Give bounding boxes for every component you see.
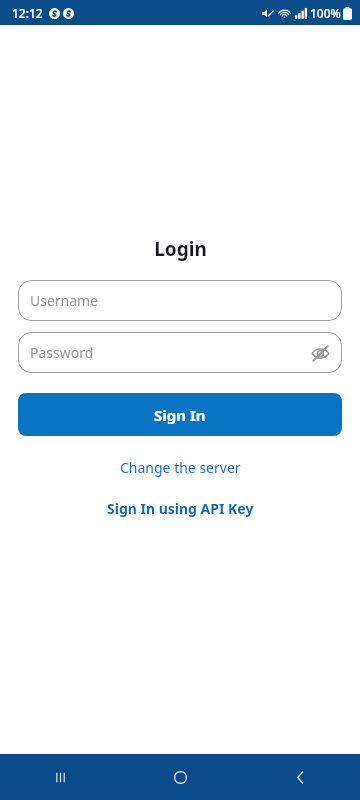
button[interactable]: Username [18, 280, 342, 321]
button[interactable]: Change the server [108, 454, 253, 481]
staticText: Username [30, 291, 99, 310]
button[interactable]: Password [18, 332, 342, 373]
button[interactable]: Sign In [18, 393, 342, 436]
staticText: Sign In [154, 405, 206, 425]
staticText: Password [30, 343, 94, 362]
staticText: Login [154, 236, 207, 262]
staticText: 100% [310, 5, 341, 21]
button[interactable]: Back [240, 754, 360, 800]
button[interactable]: Recent apps [0, 754, 120, 800]
staticText: Change the server [120, 458, 241, 477]
staticText: 12:12 [12, 5, 43, 21]
button[interactable]: Home [120, 754, 240, 800]
button[interactable]: Show password [306, 339, 334, 367]
staticText: Sign In using API Key [107, 499, 254, 518]
button[interactable]: Sign In using API Key [95, 495, 266, 522]
